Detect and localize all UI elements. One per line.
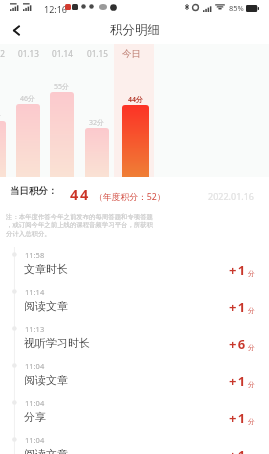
button[interactable]: 11:04	[0, 395, 269, 432]
button[interactable]: 11:04	[0, 432, 269, 454]
staticText: 2022.01.16	[208, 190, 255, 202]
staticText: 分	[248, 417, 255, 426]
staticText: 11:04	[25, 435, 45, 445]
staticText: 46分	[20, 94, 36, 104]
staticText: 44	[70, 184, 90, 204]
staticText: 分	[248, 343, 255, 352]
staticText: 11:04	[25, 398, 45, 408]
button[interactable]: 11:04	[0, 358, 269, 395]
staticText: 12:16	[44, 3, 68, 15]
staticText: +1	[229, 409, 247, 427]
staticText: 积分明细	[110, 22, 160, 38]
staticText: 分	[248, 380, 255, 389]
staticText: 11:14	[25, 287, 45, 297]
staticText: （年度积分：52）	[94, 191, 166, 203]
staticText: 阅读文章	[24, 299, 68, 313]
staticText: 01.13	[18, 48, 39, 59]
staticText: 阅读文章	[24, 447, 68, 454]
staticText: 视听学习时长	[24, 336, 90, 350]
staticText: 11:04	[25, 361, 45, 371]
button[interactable]: 11:13	[0, 321, 269, 358]
staticText: +1	[229, 446, 247, 454]
staticText: 44分	[128, 95, 144, 105]
staticText: +1	[229, 372, 247, 390]
staticText: 01.14	[52, 48, 73, 59]
staticText: 当日积分：	[10, 185, 58, 197]
staticText: 32分	[89, 118, 105, 128]
staticText: 分	[248, 306, 255, 315]
staticText: 11:58	[25, 250, 45, 260]
staticText: +1	[229, 261, 247, 279]
staticText: 01.12	[0, 48, 5, 59]
staticText: 注：本年度作答今年之前发布的每周答题和专项答题 ，或订阅今年之前上线的课程音频学…	[6, 213, 263, 238]
staticText: 分	[248, 269, 255, 278]
staticText: 阅读文章	[24, 373, 68, 387]
button[interactable]: Back	[0, 16, 32, 44]
button[interactable]: 11:58	[0, 247, 269, 284]
staticText: 文章时长	[24, 262, 68, 276]
staticText: 55分	[54, 82, 70, 92]
staticText: 11:13	[25, 324, 45, 334]
staticText: 85%	[229, 3, 244, 13]
staticText: 36分	[0, 111, 2, 121]
staticText: +1	[229, 298, 247, 316]
staticText: 分享	[24, 410, 46, 424]
staticText: 今日	[122, 48, 141, 60]
staticText: 01.15	[87, 48, 108, 59]
staticText: +6	[229, 335, 247, 353]
button[interactable]: 11:14	[0, 284, 269, 321]
